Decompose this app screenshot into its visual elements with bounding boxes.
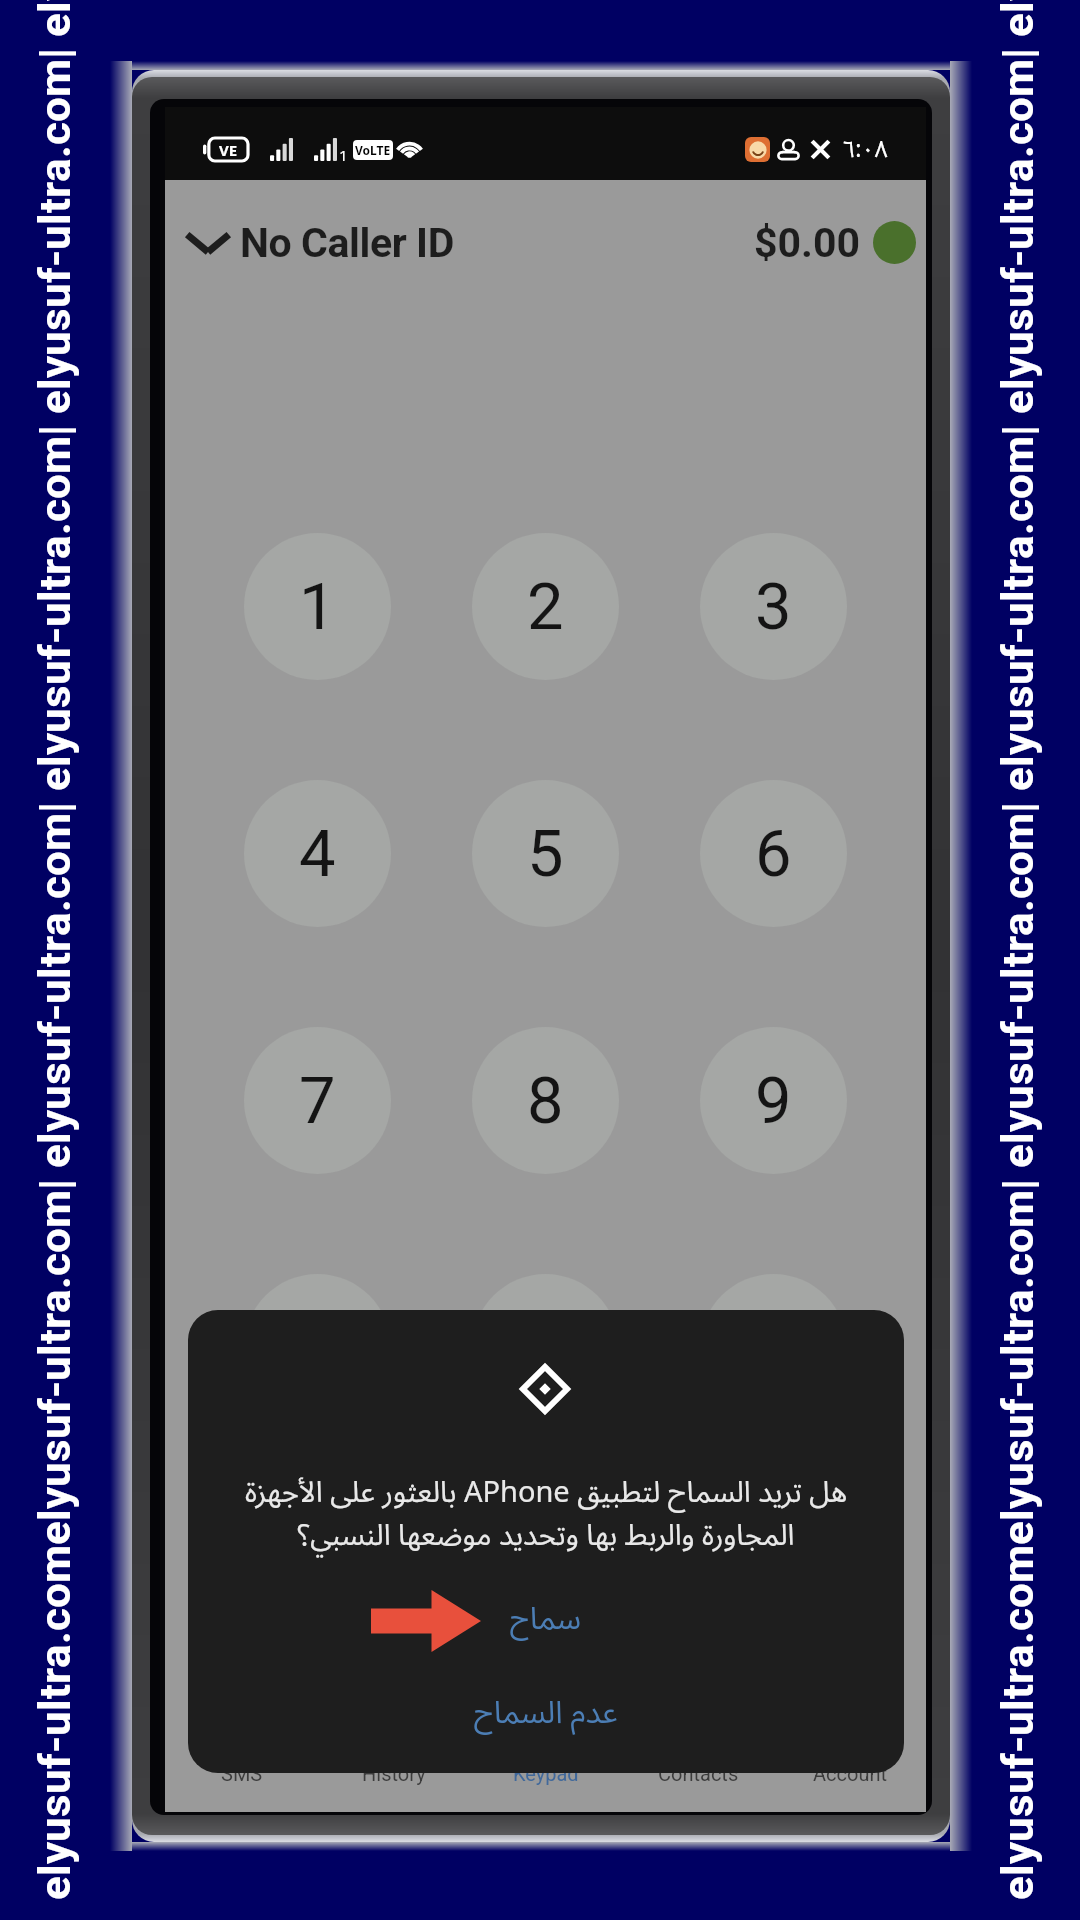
staticText: 7	[299, 1063, 336, 1139]
button[interactable]: 7	[244, 1027, 391, 1174]
staticText: 8	[527, 1063, 564, 1139]
staticText: 0	[527, 1310, 564, 1386]
staticText: VoLTE	[355, 142, 391, 158]
button[interactable]: 5	[472, 780, 619, 927]
button[interactable]: #	[700, 1274, 847, 1421]
button[interactable]: Account status	[873, 221, 916, 264]
staticText: سماح	[510, 1586, 582, 1651]
staticText: 4	[299, 816, 336, 892]
staticText: ٦:٠٨	[842, 125, 888, 174]
button[interactable]: Keypad	[470, 1740, 622, 1812]
staticText: Account	[813, 1762, 888, 1785]
button[interactable]: عدم السماح	[188, 1676, 904, 1748]
button[interactable]: *	[244, 1274, 391, 1421]
staticText: Keypad	[513, 1762, 579, 1785]
staticText: عدم السماح	[474, 1680, 618, 1745]
button[interactable]: History	[318, 1740, 470, 1812]
button[interactable]: No Caller ID	[165, 209, 464, 277]
staticText: No Caller ID	[240, 219, 454, 267]
staticText: 2	[527, 569, 564, 645]
staticText: Contacts	[658, 1762, 739, 1785]
staticText: 9	[755, 1063, 792, 1139]
button[interactable]: 9	[700, 1027, 847, 1174]
staticText: SMS	[221, 1762, 263, 1785]
button[interactable]: 2	[472, 533, 619, 680]
button[interactable]: 4	[244, 780, 391, 927]
staticText: History	[362, 1762, 426, 1785]
staticText: 6	[755, 816, 792, 892]
button[interactable]: Contacts	[622, 1740, 774, 1812]
button[interactable]: 6	[700, 780, 847, 927]
staticText: VE	[219, 140, 238, 160]
staticText: هل تريد السماح لتطبيق APhone بالعثور على…	[218, 1462, 874, 1566]
button[interactable]: SMS	[165, 1740, 318, 1812]
button[interactable]: 0	[472, 1274, 619, 1421]
button[interactable]: 3	[700, 533, 847, 680]
button[interactable]: $0.00	[754, 219, 860, 267]
staticText: 3	[755, 569, 792, 645]
staticText: 5	[527, 816, 564, 892]
staticText: 1	[339, 145, 348, 165]
staticText: 1	[299, 569, 336, 645]
button[interactable]: 8	[472, 1027, 619, 1174]
button[interactable]: Account	[774, 1740, 926, 1812]
button[interactable]: 1	[244, 533, 391, 680]
button[interactable]: سماح	[188, 1582, 904, 1654]
